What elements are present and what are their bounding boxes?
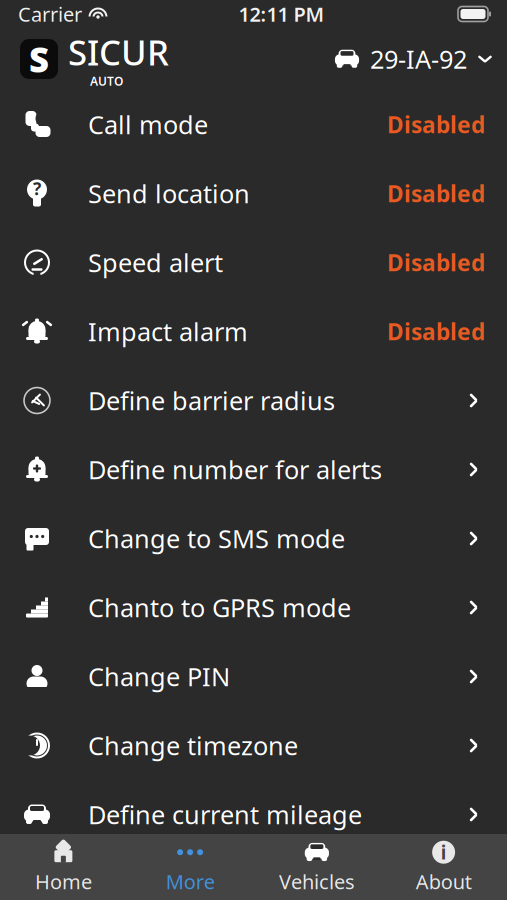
staticText: Change PIN xyxy=(88,660,230,693)
staticText: Disabled xyxy=(387,247,485,277)
staticText: Call mode xyxy=(88,108,208,141)
button[interactable]: Define number for alerts xyxy=(0,435,507,504)
button[interactable]: Define current mileage xyxy=(0,780,507,849)
button[interactable]: Home xyxy=(0,831,127,900)
button[interactable]: Change to SMS mode xyxy=(0,504,507,573)
button[interactable]: Select vehicle 29-IA-92 xyxy=(334,42,507,76)
button[interactable]: More xyxy=(127,831,254,900)
staticText: Speed alert xyxy=(88,246,223,279)
staticText: More xyxy=(166,868,215,895)
button[interactable]: Vehicles xyxy=(253,831,380,900)
button[interactable]: Define service interval xyxy=(0,849,507,900)
button[interactable]: Impact alarm xyxy=(0,297,507,366)
button[interactable]: ? xyxy=(0,159,507,228)
staticText: Disabled xyxy=(387,178,485,208)
staticText: Define number for alerts xyxy=(88,453,382,486)
staticText: 29-IA-92 xyxy=(370,42,467,76)
staticText: ? xyxy=(33,177,41,200)
staticText: Impact alarm xyxy=(88,315,248,348)
button[interactable]: Define barrier radius xyxy=(0,366,507,435)
staticText: 12:11 PM xyxy=(238,1,324,27)
staticText: Vehicles xyxy=(279,868,355,895)
staticText: SICUR xyxy=(68,29,169,75)
button[interactable]: Call mode xyxy=(0,90,507,159)
button[interactable]: Change timezone xyxy=(0,711,507,780)
staticText: S xyxy=(29,36,49,82)
staticText: Home xyxy=(35,868,92,895)
button[interactable]: Speed alert xyxy=(0,228,507,297)
button[interactable]: SICUR Auto xyxy=(0,29,169,89)
staticText: Define barrier radius xyxy=(88,384,335,417)
button[interactable]: Chanto to GPRS mode xyxy=(0,573,507,642)
button[interactable]: Change PIN xyxy=(0,642,507,711)
staticText: Send location xyxy=(88,177,250,210)
staticText: AUTO xyxy=(90,73,123,89)
staticText: i xyxy=(441,840,447,865)
staticText: Define service interval xyxy=(88,867,351,900)
staticText: Disabled xyxy=(387,109,485,139)
staticText: Define current mileage xyxy=(88,798,362,831)
staticText: Chanto to GPRS mode xyxy=(88,591,351,624)
button[interactable]: i xyxy=(380,831,507,900)
staticText: Carrier xyxy=(18,1,82,27)
staticText: Change to SMS mode xyxy=(88,522,345,555)
staticText: Change timezone xyxy=(88,729,298,762)
staticText: Disabled xyxy=(387,316,485,346)
staticText: About xyxy=(416,868,472,895)
